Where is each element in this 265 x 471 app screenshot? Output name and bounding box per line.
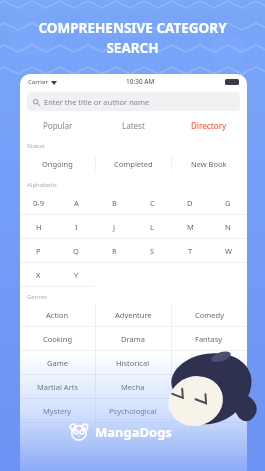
other: MangaDogs logo [68,421,90,443]
staticText: Ongoing [42,159,73,169]
button[interactable]: Horror [171,351,247,375]
button[interactable]: H [20,215,57,239]
button[interactable]: New Book [171,152,247,175]
button[interactable]: B [95,191,133,215]
staticText: L [150,222,154,232]
staticText: Mecha [121,382,145,392]
staticText: P [36,246,41,256]
staticText: Horror [197,358,221,368]
staticText: Status [27,142,45,150]
staticText: Q [73,246,79,256]
staticText: Martial Arts [37,382,79,392]
button[interactable]: G [209,191,247,215]
staticText: X [36,270,41,280]
button[interactable]: Mystery [20,399,95,423]
staticText: Carrier [28,78,48,86]
button[interactable]: Comedy [171,303,247,327]
staticText: D [187,198,193,208]
staticText: Comedy [195,310,224,320]
staticText: S [150,246,155,256]
button[interactable]: R [95,239,133,263]
button[interactable]: J [95,215,133,239]
staticText: R [112,246,117,256]
button[interactable]: Action [20,303,95,327]
button[interactable]: L [133,215,171,239]
staticText: COMPREHENSIVE CATEGORY [38,19,227,37]
staticText: G [225,198,231,208]
staticText: MangaDogs [95,423,172,441]
staticText: W [225,246,232,256]
button[interactable]: Enter the title or author name [27,92,240,111]
staticText: Alphabetic [27,181,57,189]
staticText: I [75,222,78,232]
staticText: Historical [116,358,150,368]
staticText: N [225,222,231,232]
staticText: Shounen [193,406,225,416]
button[interactable]: W [209,239,247,263]
button[interactable]: 0-9 [20,191,57,215]
button[interactable]: Directory [171,114,247,136]
button[interactable]: Q [57,239,95,263]
button[interactable]: Drama [95,327,171,351]
button[interactable]: P [20,239,57,263]
button[interactable]: Popular [20,114,95,136]
button[interactable]: N [209,215,247,239]
button[interactable]: Music [171,375,247,399]
button[interactable]: D [171,191,209,215]
staticText: 0-9 [33,198,44,208]
button[interactable]: Game [20,351,95,375]
staticText: J [113,222,116,232]
button[interactable]: Cooking [20,327,95,351]
button[interactable]: Adventure [95,303,171,327]
staticText: Mystery [43,406,72,416]
staticText: SEARCH [106,39,159,57]
button[interactable]: X [20,263,57,287]
button[interactable]: Completed [95,152,171,175]
staticText: Completed [114,159,153,169]
button[interactable]: I [57,215,95,239]
staticText: Popular [43,120,73,131]
staticText: Adventure [115,310,152,320]
staticText: Latest [122,120,145,131]
button[interactable]: S [133,239,171,263]
button[interactable]: A [57,191,95,215]
staticText: T [188,246,193,256]
staticText: Action [46,310,69,320]
staticText: Fantasy [195,334,223,344]
staticText: M [187,222,194,232]
staticText: Genres [27,293,48,301]
button[interactable]: Ongoing [20,152,95,175]
button[interactable]: Historical [95,351,171,375]
button[interactable]: Shounen [171,399,247,423]
button[interactable]: Y [57,263,95,287]
staticText: Music [199,382,220,392]
staticText: Cooking [43,334,73,344]
button[interactable]: Fantasy [171,327,247,351]
staticText: Drama [121,334,145,344]
button[interactable]: C [133,191,171,215]
button[interactable]: Psychological [95,399,171,423]
button[interactable]: Latest [95,114,171,136]
staticText: Psychological [109,406,157,416]
staticText: Game [47,358,68,368]
button[interactable]: T [171,239,209,263]
button[interactable]: Mecha [95,375,171,399]
button[interactable]: Martial Arts [20,375,95,399]
staticText: B [112,198,117,208]
staticText: Y [74,270,79,280]
staticText: 10:30 AM [126,77,155,86]
staticText: Directory [191,120,227,131]
staticText: C [150,198,155,208]
button[interactable]: M [171,215,209,239]
other: MangaDogs mascot [159,345,261,433]
staticText: A [74,198,79,208]
staticText: Enter the title or author name [44,97,150,107]
staticText: New Book [191,159,227,169]
staticText: H [36,222,42,232]
